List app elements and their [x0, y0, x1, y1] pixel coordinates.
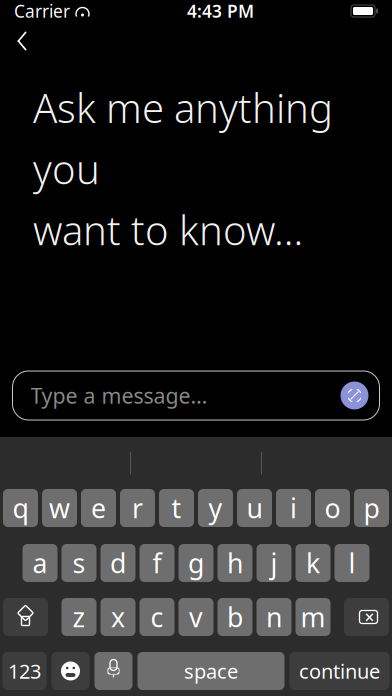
staticText: Type a message… — [30, 381, 207, 410]
staticText: a — [32, 545, 47, 581]
button[interactable]: Send — [339, 380, 369, 410]
button[interactable]: j — [256, 544, 291, 582]
button[interactable]: o — [315, 489, 350, 527]
button[interactable]: q — [3, 489, 38, 527]
staticText: continue — [299, 658, 380, 684]
staticText: Ask me anything you want to know… — [33, 81, 333, 256]
button[interactable]: m — [295, 598, 330, 636]
staticText: n — [266, 599, 282, 635]
staticText: o — [324, 490, 340, 526]
button[interactable]: f — [139, 544, 174, 582]
staticText: f — [152, 545, 161, 581]
staticText: c — [150, 599, 163, 635]
button[interactable]: 123 — [2, 652, 46, 690]
button[interactable]: w — [42, 489, 77, 527]
staticText: j — [270, 545, 277, 581]
staticText: × — [364, 605, 374, 628]
button[interactable]: Emoji — [51, 652, 89, 690]
staticText: space — [184, 658, 238, 684]
staticText: x — [111, 599, 125, 635]
staticText: h — [227, 545, 243, 581]
staticText: w — [49, 490, 70, 526]
button[interactable]: e — [81, 489, 116, 527]
staticText: d — [110, 545, 126, 581]
staticText: g — [188, 545, 204, 581]
staticText: b — [227, 599, 243, 635]
button[interactable]: y — [198, 489, 233, 527]
button[interactable]: Back — [0, 22, 44, 60]
button[interactable]: n — [256, 598, 291, 636]
button[interactable]: a — [22, 544, 57, 582]
staticText: u — [246, 490, 262, 526]
staticText: e — [91, 490, 106, 526]
staticText: p — [363, 490, 379, 526]
staticText: q — [12, 490, 28, 526]
staticText: 4:43 PM — [187, 0, 254, 22]
staticText: r — [132, 490, 143, 526]
staticText: Carrier — [14, 0, 70, 22]
button[interactable]: t — [159, 489, 194, 527]
button[interactable]: z — [61, 598, 96, 636]
button[interactable]: k — [295, 544, 330, 582]
staticText: k — [306, 545, 320, 581]
staticText: y — [208, 490, 222, 526]
button[interactable]: d — [100, 544, 135, 582]
staticText: t — [171, 490, 181, 526]
button[interactable]: p — [354, 489, 389, 527]
staticText: m — [300, 599, 325, 635]
staticText: i — [290, 490, 297, 526]
staticText: v — [189, 599, 203, 635]
button[interactable]: continue — [289, 652, 389, 690]
button[interactable]: Delete — [344, 598, 389, 636]
button[interactable]: v — [178, 598, 213, 636]
button[interactable]: space — [137, 652, 284, 690]
staticText: 123 — [8, 658, 41, 684]
staticText: s — [72, 545, 85, 581]
button[interactable]: Shift — [3, 598, 48, 636]
staticText: z — [72, 599, 85, 635]
button[interactable]: g — [178, 544, 213, 582]
staticText: l — [348, 545, 355, 581]
button[interactable]: r — [120, 489, 155, 527]
button[interactable]: x — [100, 598, 135, 636]
button[interactable]: i — [276, 489, 311, 527]
button[interactable]: u — [237, 489, 272, 527]
button[interactable]: h — [217, 544, 252, 582]
button[interactable]: s — [61, 544, 96, 582]
button[interactable]: l — [334, 544, 369, 582]
button[interactable]: c — [139, 598, 174, 636]
button[interactable]: b — [217, 598, 252, 636]
button[interactable]: Dictation — [94, 652, 132, 690]
